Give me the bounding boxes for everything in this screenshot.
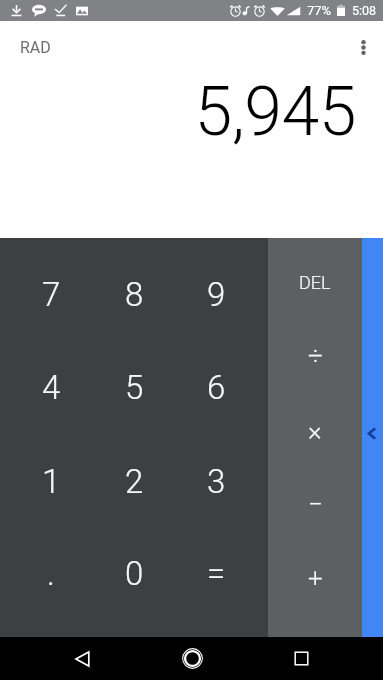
button[interactable]: RAD (12, 30, 56, 64)
button[interactable]: . (0, 537, 90, 637)
button[interactable]: 6 (179, 337, 268, 437)
staticText: 1 (42, 462, 61, 501)
staticText: = (207, 554, 226, 593)
button[interactable]: Recent apps (279, 637, 323, 680)
button[interactable]: Expand panel (362, 238, 383, 637)
button[interactable]: 3 (179, 437, 268, 537)
button[interactable]: ÷ (268, 317, 362, 397)
staticText: 6 (207, 368, 226, 407)
staticText: 3 (207, 462, 226, 501)
staticText: 77% (307, 3, 332, 18)
button[interactable]: 2 (90, 437, 179, 537)
button[interactable]: 0 (90, 537, 179, 637)
button[interactable]: − (268, 477, 362, 557)
staticText: 0 (125, 554, 144, 593)
button[interactable]: Home (170, 637, 214, 680)
staticText: 7 (42, 275, 61, 314)
button[interactable]: 4 (0, 337, 90, 437)
staticText: × (308, 416, 322, 446)
staticText: ÷ (308, 341, 323, 371)
staticText: DEL (299, 272, 331, 293)
staticText: 8 (125, 275, 144, 314)
staticText: 2 (125, 462, 144, 501)
staticText: . (47, 554, 55, 593)
button[interactable]: Back (60, 637, 104, 680)
staticText: 5:08 (352, 3, 377, 18)
button[interactable]: 1 (0, 437, 90, 537)
button[interactable]: 8 (90, 238, 179, 337)
staticText: 5,945 (194, 72, 356, 152)
button[interactable]: 9 (179, 238, 268, 337)
staticText: 5 (125, 368, 144, 407)
button[interactable]: 7 (0, 238, 90, 337)
staticText: 9 (207, 275, 226, 314)
button[interactable]: = (179, 537, 268, 637)
staticText: 4 (42, 368, 61, 407)
button[interactable]: DEL (268, 238, 362, 317)
button[interactable]: + (268, 557, 362, 637)
staticText: RAD (20, 38, 51, 57)
staticText: − (308, 489, 323, 519)
staticText: + (308, 563, 323, 593)
button[interactable]: × (268, 397, 362, 477)
button[interactable]: More options (342, 25, 383, 69)
button[interactable]: 5 (90, 337, 179, 437)
